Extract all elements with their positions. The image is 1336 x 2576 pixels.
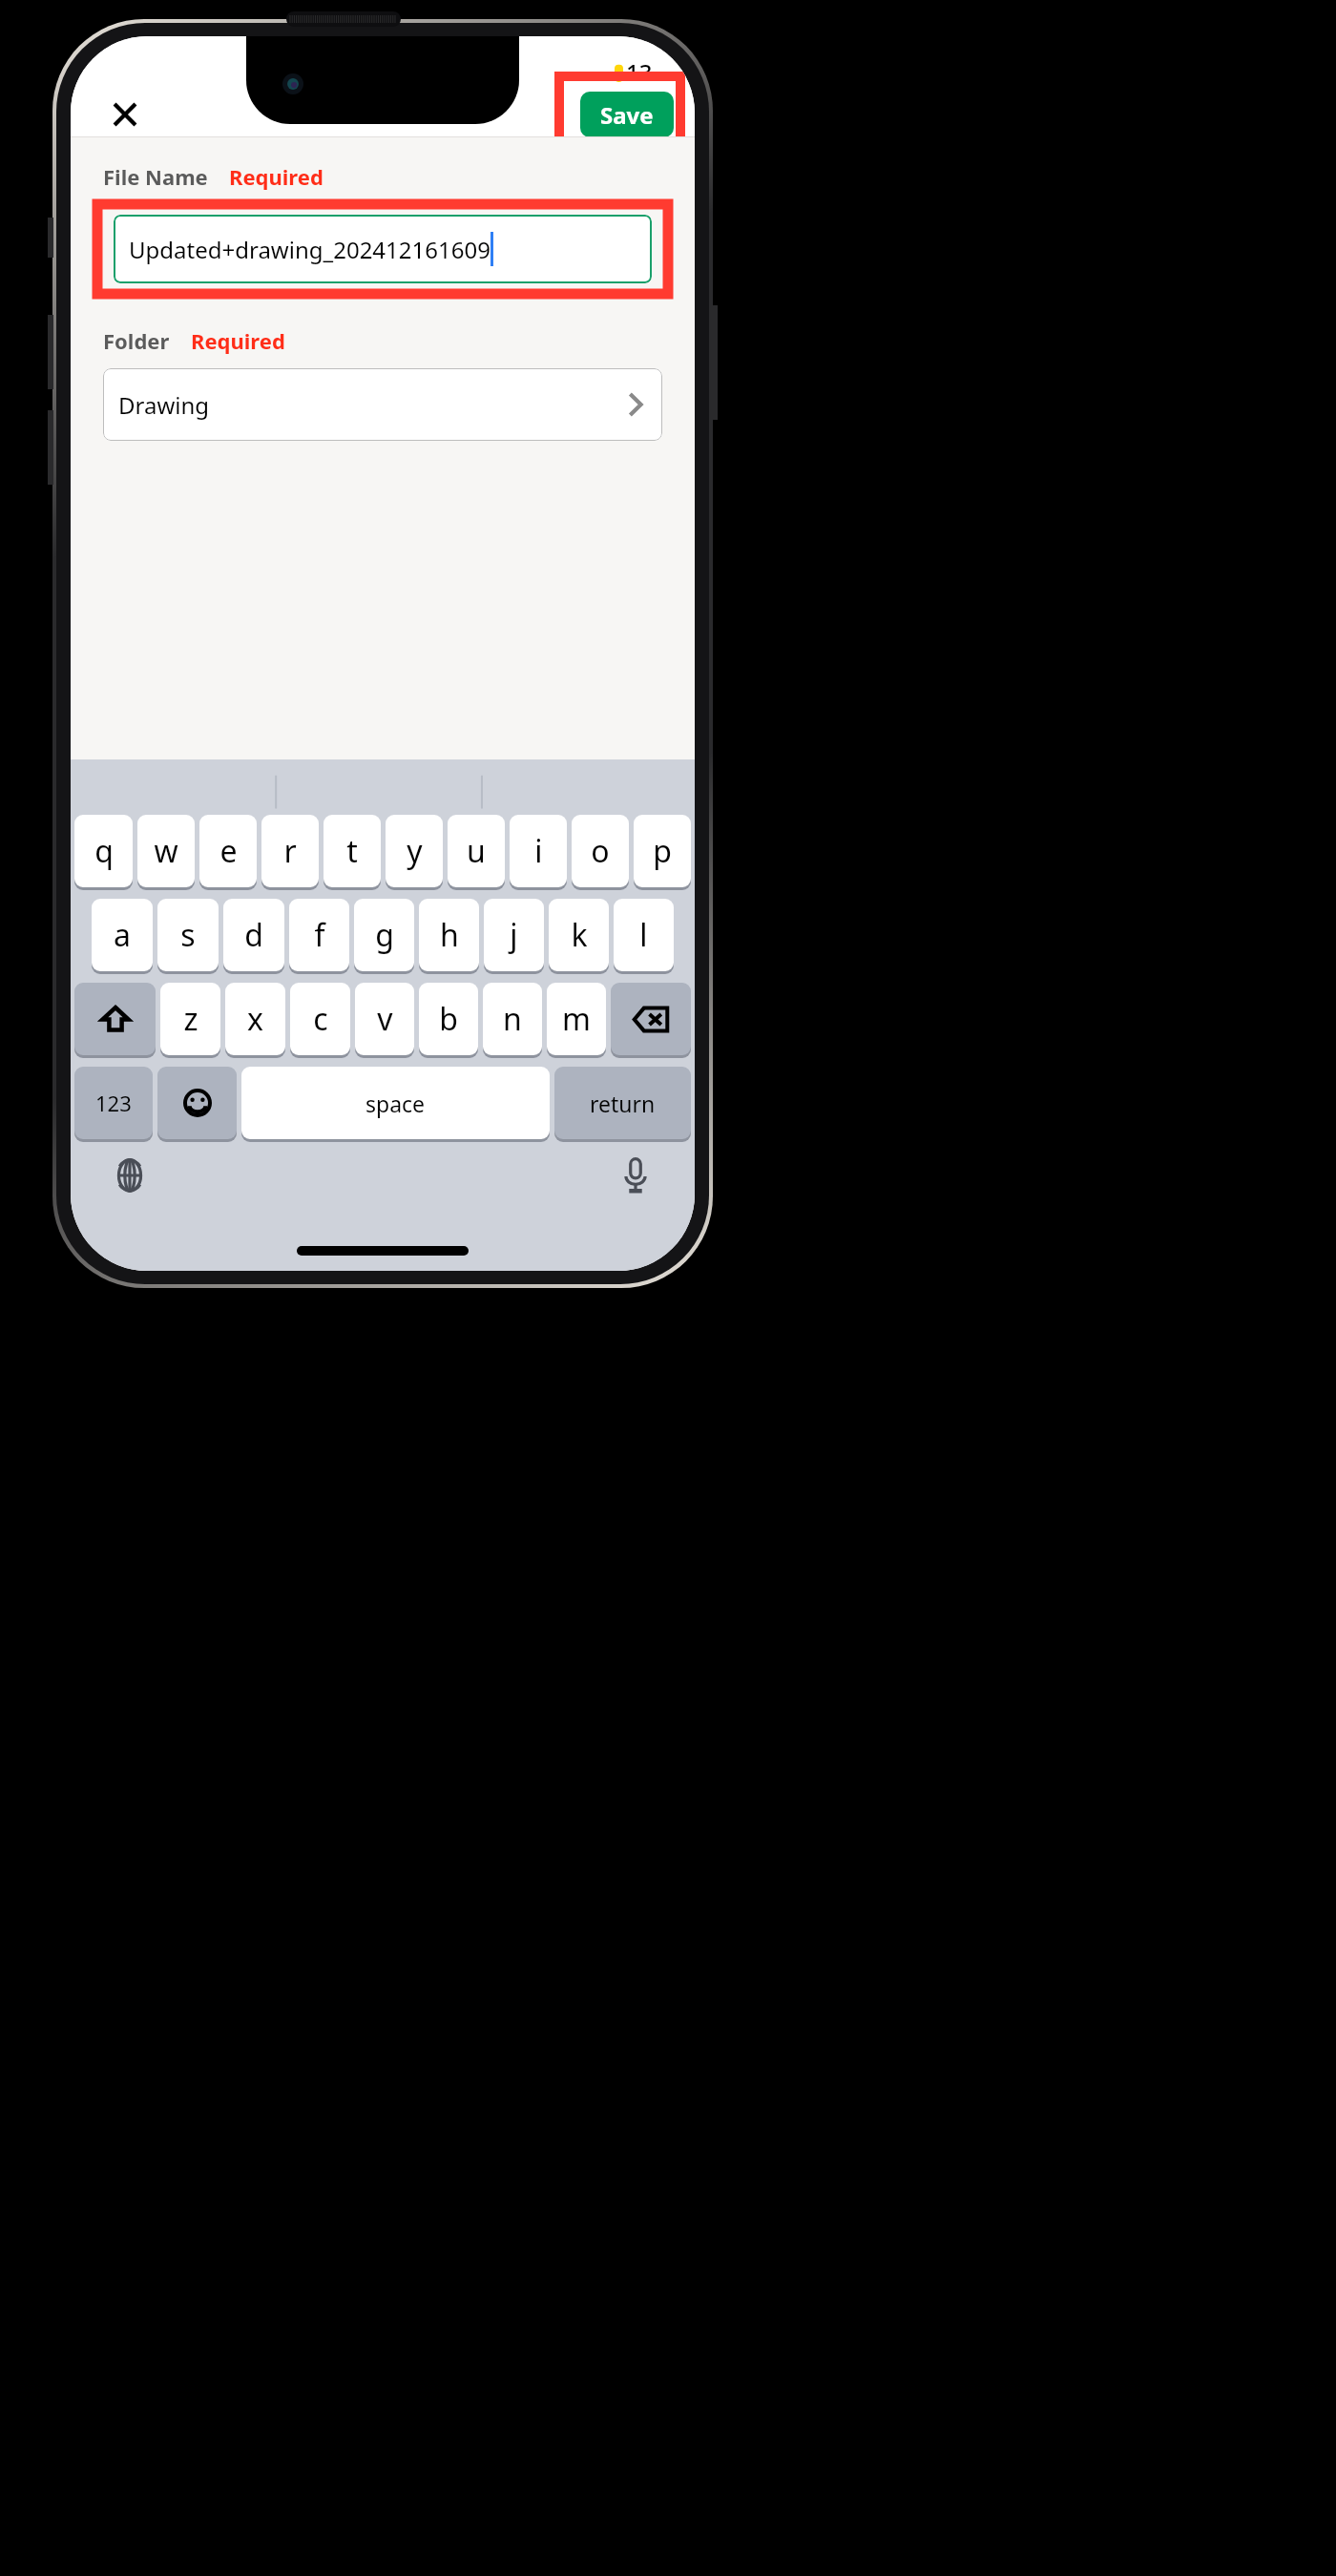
staticText: o <box>591 830 610 872</box>
button[interactable]: x <box>225 983 285 1055</box>
button[interactable]: r <box>261 815 319 887</box>
button[interactable]: g <box>354 899 414 971</box>
staticText: y <box>407 830 423 872</box>
staticText: i <box>534 830 543 872</box>
button[interactable]: Save <box>580 92 674 137</box>
staticText: Required <box>229 162 324 191</box>
button[interactable]: e <box>199 815 257 887</box>
staticText: Required <box>191 326 285 355</box>
staticText: j <box>510 914 518 956</box>
button[interactable]: Shift <box>74 983 156 1055</box>
staticText: Folder <box>103 326 170 355</box>
staticText: 123 <box>95 1089 132 1117</box>
button[interactable]: t <box>324 815 381 887</box>
staticText: g <box>375 914 394 956</box>
staticText: Updated+drawing_202412161609 <box>129 234 491 265</box>
staticText: k <box>571 914 588 956</box>
staticText: b <box>439 998 458 1040</box>
button[interactable]: d <box>223 899 284 971</box>
staticText: h <box>440 914 459 956</box>
button[interactable]: f <box>289 899 349 971</box>
staticText: 13 <box>626 56 653 88</box>
button[interactable]: n <box>483 983 542 1055</box>
staticText: u <box>467 830 486 872</box>
staticText: f <box>314 914 325 956</box>
staticText: space <box>365 1089 426 1118</box>
button[interactable]: s <box>157 899 219 971</box>
button[interactable]: w <box>137 815 195 887</box>
button[interactable]: 123 <box>74 1067 153 1139</box>
button[interactable]: k <box>549 899 609 971</box>
staticText: Drawing <box>118 389 210 421</box>
button[interactable]: j <box>484 899 544 971</box>
staticText: z <box>183 998 198 1040</box>
staticText: c <box>313 998 328 1040</box>
staticText: Save <box>600 99 654 131</box>
button[interactable]: space <box>241 1067 550 1139</box>
button[interactable]: i <box>510 815 567 887</box>
staticText: p <box>653 830 672 872</box>
button[interactable]: Dictation <box>611 1151 660 1200</box>
staticText: e <box>219 830 238 872</box>
staticText: a <box>114 914 131 956</box>
button[interactable]: q <box>74 815 133 887</box>
staticText: return <box>590 1089 656 1118</box>
staticText: m <box>562 998 591 1040</box>
button[interactable]: a <box>92 899 153 971</box>
button[interactable]: u <box>448 815 505 887</box>
staticText: r <box>283 830 297 872</box>
button[interactable]: Updated+drawing_202412161609 <box>114 215 652 283</box>
staticText: s <box>180 914 196 956</box>
staticText: q <box>94 830 114 872</box>
button[interactable]: h <box>419 899 479 971</box>
staticText: v <box>377 998 393 1040</box>
button[interactable]: b <box>419 983 478 1055</box>
button[interactable]: m <box>547 983 606 1055</box>
button[interactable]: z <box>160 983 220 1055</box>
button[interactable]: Close <box>103 93 147 136</box>
staticText: n <box>503 998 522 1040</box>
button[interactable]: y <box>386 815 443 887</box>
button[interactable]: Drawing <box>103 368 662 441</box>
staticText: x <box>247 998 263 1040</box>
button[interactable]: Backspace <box>611 983 691 1055</box>
button[interactable]: o <box>572 815 629 887</box>
button[interactable]: c <box>290 983 350 1055</box>
staticText: File Name <box>103 162 208 191</box>
button[interactable]: p <box>634 815 691 887</box>
button[interactable]: Emoji <box>157 1067 237 1139</box>
button[interactable]: return <box>554 1067 691 1139</box>
staticText: d <box>244 914 263 956</box>
staticText: l <box>639 914 648 956</box>
staticText: t <box>346 830 358 872</box>
staticText: w <box>154 830 178 872</box>
button[interactable]: v <box>355 983 414 1055</box>
button[interactable]: l <box>614 899 674 971</box>
staticText: Save as <box>339 98 427 131</box>
button[interactable]: Change keyboard <box>105 1151 155 1200</box>
